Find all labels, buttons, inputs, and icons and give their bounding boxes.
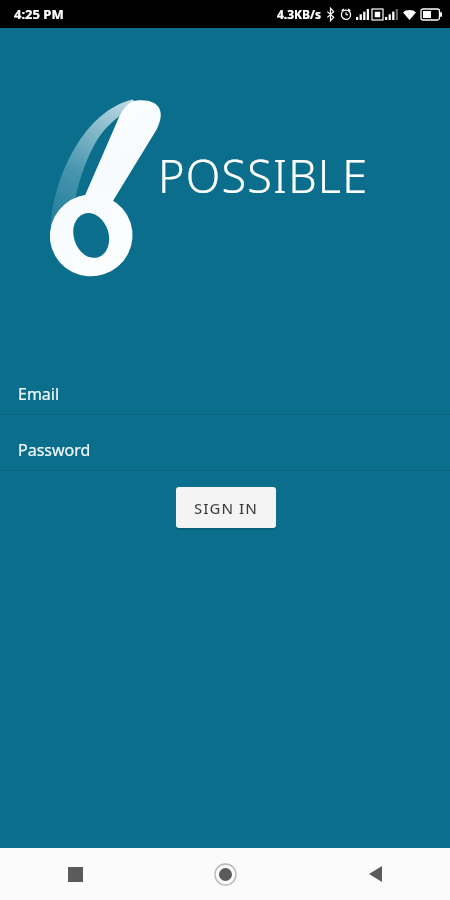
button[interactable]: Recent apps (0, 848, 150, 900)
button[interactable]: Email (0, 374, 450, 415)
button[interactable]: Home (150, 848, 300, 900)
staticText: Password (18, 439, 91, 461)
button[interactable]: Password (0, 430, 450, 471)
button[interactable]: SIGN IN (176, 487, 276, 528)
staticText: 4.3KB/s (277, 6, 322, 22)
button[interactable]: Back (300, 848, 450, 900)
staticText: SIGN IN (194, 498, 258, 518)
staticText: 4:25 PM (14, 5, 64, 23)
staticText: POSSIBLE (158, 145, 369, 206)
staticText: Email (18, 383, 60, 405)
